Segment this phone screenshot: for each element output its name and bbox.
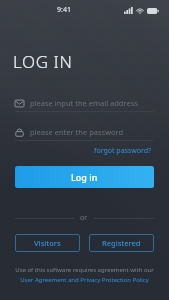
button[interactable]: Password	[15, 124, 154, 141]
staticText: 9:41	[57, 5, 71, 15]
button[interactable]: Registered	[89, 234, 154, 252]
staticText: Registered	[102, 238, 141, 248]
staticText: or	[80, 213, 88, 223]
staticText: Use of this software requires agreement …	[15, 266, 154, 274]
staticText: LOG IN	[13, 50, 73, 73]
button[interactable]: Visitors	[15, 234, 80, 252]
staticText: forgot password?	[94, 146, 152, 156]
button[interactable]: forgot password?	[92, 145, 154, 157]
other: Password	[15, 128, 24, 137]
button[interactable]: Log in	[15, 166, 154, 188]
other: Email	[15, 99, 24, 108]
staticText: please enter the password	[30, 127, 124, 137]
button[interactable]: User Agreement and Privacy Protection Po…	[18, 276, 151, 284]
staticText: User Agreement and Privacy Protection Po…	[20, 276, 149, 284]
staticText: Log in	[71, 171, 98, 183]
staticText: Visitors	[34, 238, 61, 248]
staticText: please input the email address	[30, 98, 138, 108]
button[interactable]: Email	[15, 95, 154, 112]
